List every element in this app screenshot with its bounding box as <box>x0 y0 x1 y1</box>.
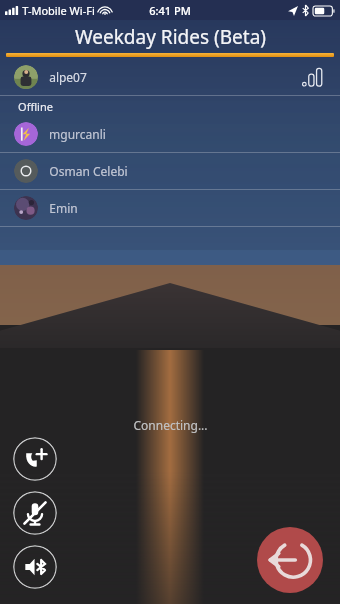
other: Signal strength <box>302 65 328 89</box>
staticText: T-Mobile Wi-Fi <box>22 3 95 18</box>
staticText: Weekday Rides (Beta) <box>75 24 266 50</box>
button[interactable]: Leave call <box>257 527 323 593</box>
staticText: Emin <box>49 200 78 216</box>
staticText: alpe07 <box>49 69 87 85</box>
button[interactable]: Emin <box>0 190 340 226</box>
button[interactable]: Speaker <box>13 545 57 589</box>
staticText: Osman Celebi <box>49 163 128 179</box>
button[interactable]: Add call <box>13 437 57 481</box>
staticText: Connecting... <box>133 417 208 433</box>
staticText: Offline <box>18 99 53 114</box>
staticText: mgurcanli <box>49 126 106 142</box>
button[interactable]: alpe07 <box>0 58 340 95</box>
button[interactable]: Osman Celebi <box>0 153 340 189</box>
button[interactable]: mgurcanli <box>0 116 340 152</box>
staticText: 6:41 PM <box>149 3 191 18</box>
button[interactable]: Mute <box>13 491 57 535</box>
